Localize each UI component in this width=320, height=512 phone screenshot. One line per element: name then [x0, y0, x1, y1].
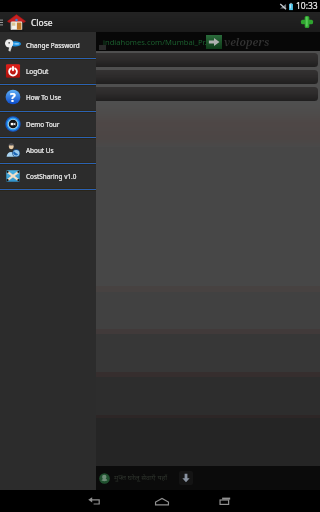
button[interactable]: Download	[179, 471, 193, 485]
staticText: मुफ्त घरेलू सेवाएँ यहाँ	[114, 473, 168, 483]
button[interactable]: Recent apps	[208, 490, 242, 512]
staticText: Close	[31, 17, 53, 29]
staticText: LogOut	[26, 67, 49, 76]
button[interactable]: ?	[5, 84, 96, 110]
button[interactable]: About Us	[5, 137, 96, 163]
staticText: 10:33	[296, 0, 318, 12]
staticText: Change Password	[26, 41, 80, 50]
staticText: About Us	[26, 146, 54, 155]
button[interactable]: Menu	[0, 17, 6, 27]
staticText: velopers	[224, 35, 270, 49]
staticText: Demo Tour	[26, 120, 60, 129]
button[interactable]: Change Password	[5, 32, 96, 58]
staticText: How To Use	[26, 93, 62, 102]
button[interactable]: Home	[145, 490, 179, 512]
staticText: CostSharing v1.0	[26, 172, 77, 181]
button[interactable]: Add	[300, 15, 314, 29]
button[interactable]	[2, 53, 318, 67]
button[interactable]: CostSharing v1.0	[5, 163, 96, 189]
button[interactable]: Go	[206, 35, 222, 49]
staticText: indiahomes.com/Mumbai_Pr…	[103, 37, 211, 47]
button[interactable]: Close	[7, 13, 53, 32]
button[interactable]: Back	[78, 490, 112, 512]
button[interactable]	[2, 87, 318, 101]
button[interactable]: Demo Tour	[5, 111, 96, 137]
button[interactable]	[2, 70, 318, 84]
staticText: ?	[10, 89, 16, 105]
button[interactable]: LogOut	[5, 58, 96, 84]
